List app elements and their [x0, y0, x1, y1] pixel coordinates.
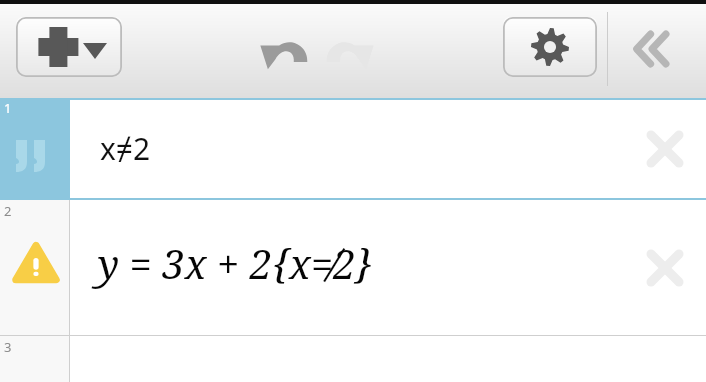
- button[interactable]: 1: [0, 98, 706, 200]
- button[interactable]: Redo: [324, 27, 378, 73]
- staticText: 2: [4, 202, 12, 220]
- button[interactable]: Delete expression: [642, 126, 688, 172]
- button[interactable]: Collapse panel: [620, 22, 684, 76]
- staticText: y = 3x + 2{x≠2}: [98, 236, 373, 290]
- staticText: x≠2: [100, 128, 151, 169]
- button[interactable]: Delete expression: [642, 245, 688, 291]
- button[interactable]: Undo: [256, 27, 310, 73]
- button[interactable]: Settings: [503, 17, 597, 77]
- staticText: 1: [4, 99, 12, 117]
- button[interactable]: Add expression: [16, 17, 122, 77]
- button[interactable]: 2: [0, 200, 706, 336]
- button[interactable]: 3: [0, 336, 706, 382]
- staticText: 3: [4, 338, 12, 356]
